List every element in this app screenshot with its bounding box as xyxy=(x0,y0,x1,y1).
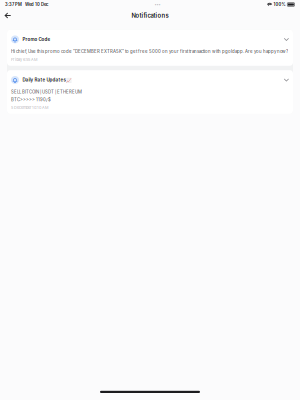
staticText: BTC>>>>> 1190/$ xyxy=(11,97,51,102)
staticText: Wed 10 Dec xyxy=(25,2,48,7)
staticText: Friday 6:55 AM xyxy=(11,57,37,62)
staticText: 100% xyxy=(273,2,285,7)
staticText: Promo Code xyxy=(22,37,50,42)
staticText: SELL BITCOIN | USDT | ETHEREUM xyxy=(11,89,82,95)
staticText: Daily Rate Updates 📈 xyxy=(22,77,72,83)
button[interactable]: Back xyxy=(1,9,14,22)
button[interactable]: Promo Code xyxy=(7,30,293,66)
staticText: 5 December 10:10 AM xyxy=(11,105,48,110)
button[interactable]: Daily Rate Updates 📈 xyxy=(7,70,293,114)
staticText: Notifications xyxy=(131,12,168,19)
staticText: Hi chief, Use this promo code "DECEMBER … xyxy=(11,49,288,54)
staticText: 3:37 PM xyxy=(5,2,22,7)
staticText: ••• xyxy=(154,2,160,7)
